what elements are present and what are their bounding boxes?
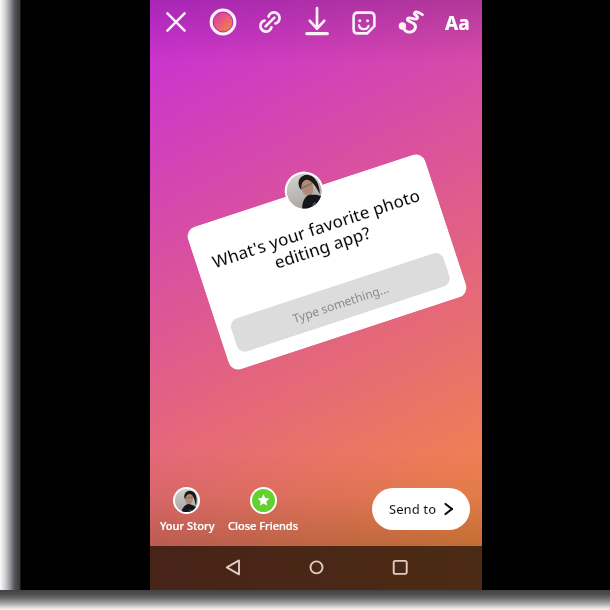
button[interactable]: Close Friends [241, 478, 285, 522]
button[interactable]: Link [253, 5, 287, 39]
button[interactable]: Type something... [228, 251, 452, 354]
staticText: Aa [445, 10, 470, 36]
button[interactable]: Close [159, 5, 193, 39]
staticText: Your Story [160, 518, 215, 533]
button[interactable]: Camera [206, 5, 240, 39]
button[interactable]: Your Story [164, 478, 208, 522]
button[interactable]: Stickers [347, 6, 381, 40]
staticText: Close Friends [228, 518, 299, 533]
staticText: Send to [389, 500, 437, 518]
button[interactable]: Draw [395, 6, 429, 40]
button[interactable]: Save [300, 5, 334, 39]
button[interactable]: Send to [372, 488, 470, 530]
button[interactable]: Text [440, 7, 474, 39]
staticText: What's your favorite photo editing app? [209, 183, 429, 292]
staticText: Type something... [290, 279, 391, 326]
